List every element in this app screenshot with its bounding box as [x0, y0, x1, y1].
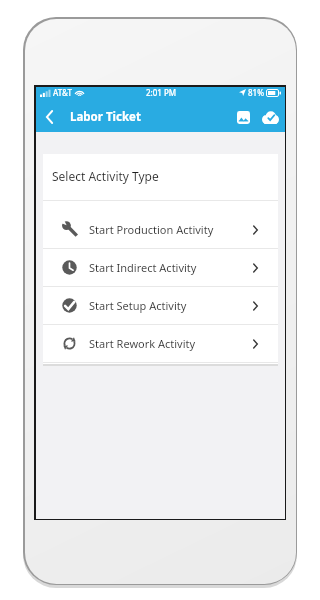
staticText: 2:01 PM: [146, 87, 177, 98]
staticText: Start Production Activity: [89, 222, 214, 237]
staticText: Start Setup Activity: [89, 298, 187, 313]
staticText: Labor Ticket: [70, 109, 141, 125]
button[interactable]: Start Indirect Activity: [43, 249, 278, 286]
staticText: Start Indirect Activity: [89, 260, 197, 275]
button[interactable]: Start Setup Activity: [43, 287, 278, 324]
button[interactable]: Start Rework Activity: [43, 325, 278, 362]
staticText: AT&T: [53, 87, 72, 98]
button[interactable]: Start Production Activity: [43, 211, 278, 248]
staticText: 81%: [248, 87, 264, 98]
button[interactable]: Upload complete: [260, 102, 280, 132]
button[interactable]: Back: [41, 102, 58, 132]
button[interactable]: Photos: [233, 102, 253, 132]
staticText: Select Activity Type: [52, 168, 159, 184]
staticText: Start Rework Activity: [89, 336, 196, 351]
